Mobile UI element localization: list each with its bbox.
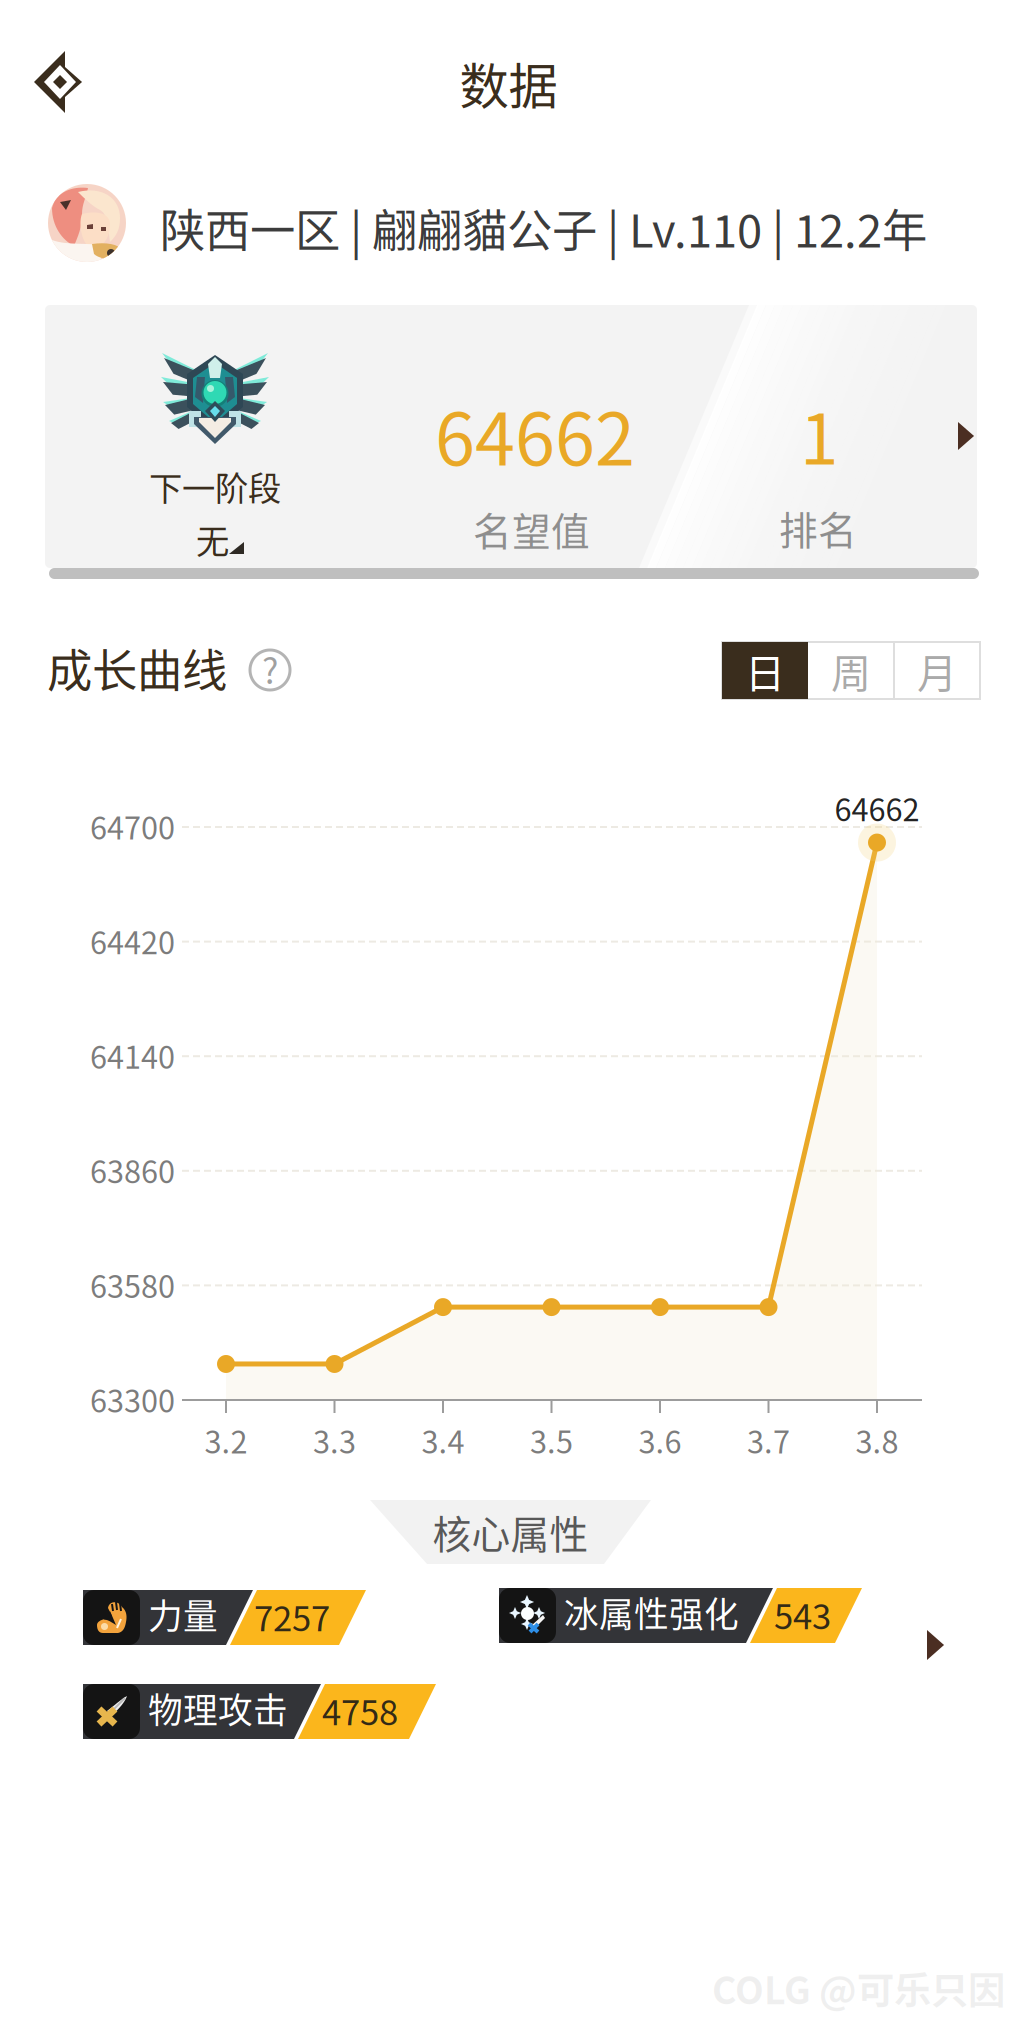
staticText: 3.2 bbox=[204, 1418, 247, 1462]
staticText: 周 bbox=[831, 641, 871, 699]
staticText: 数据 bbox=[459, 47, 557, 118]
button[interactable]: 下一阶段 bbox=[45, 305, 977, 568]
staticText: 月 bbox=[917, 641, 957, 699]
button[interactable]: 陕西一区 | 翩翩貓公子 | Lv.110 | 12.2年 bbox=[48, 180, 948, 268]
staticText: 下一阶段 bbox=[149, 462, 281, 510]
staticText: 力量 bbox=[148, 1589, 218, 1639]
staticText: 3.5 bbox=[530, 1418, 573, 1462]
staticText: ? bbox=[262, 644, 278, 694]
staticText: 64662 bbox=[834, 786, 919, 830]
button[interactable]: Menu bbox=[34, 51, 82, 113]
staticText: 7257 bbox=[254, 1591, 330, 1641]
staticText: 1 bbox=[800, 384, 838, 484]
button[interactable]: More attributes bbox=[927, 1630, 944, 1660]
staticText: 64140 bbox=[90, 1033, 175, 1078]
staticText: 物理攻击 bbox=[148, 1683, 288, 1733]
button[interactable]: 冰属性强化 bbox=[499, 1588, 862, 1643]
staticText: 543 bbox=[774, 1589, 831, 1639]
staticText: 64420 bbox=[90, 919, 175, 963]
button[interactable]: 力量 bbox=[83, 1590, 366, 1645]
button[interactable]: 日 bbox=[722, 642, 808, 699]
button[interactable]: Help bbox=[250, 650, 290, 690]
staticText: 陕西一区 | 翩翩貓公子 | Lv.110 | 12.2年 bbox=[160, 195, 927, 261]
staticText: 名望值 bbox=[473, 501, 590, 557]
button[interactable]: 周 bbox=[808, 642, 894, 699]
staticText: 3.7 bbox=[747, 1418, 790, 1462]
staticText: 成长曲线 bbox=[47, 635, 227, 701]
staticText: 冰属性强化 bbox=[564, 1587, 739, 1637]
staticText: 64700 bbox=[90, 804, 175, 848]
staticText: 64662 bbox=[435, 382, 635, 486]
button[interactable]: 月 bbox=[894, 642, 980, 699]
staticText: 排名 bbox=[779, 500, 857, 556]
staticText: 核心属性 bbox=[432, 1504, 588, 1560]
staticText: COLG @可乐只因 bbox=[712, 1961, 1005, 2015]
staticText: 3.6 bbox=[638, 1418, 681, 1462]
staticText: 63860 bbox=[90, 1148, 175, 1192]
staticText: 4758 bbox=[322, 1685, 398, 1735]
staticText: 63580 bbox=[90, 1262, 175, 1307]
staticText: 63300 bbox=[90, 1377, 175, 1421]
staticText: 无 bbox=[196, 515, 229, 563]
staticText: 日 bbox=[745, 641, 785, 699]
staticText: 3.3 bbox=[313, 1418, 356, 1462]
button[interactable]: 物理攻击 bbox=[83, 1684, 436, 1739]
staticText: 3.8 bbox=[855, 1418, 898, 1462]
staticText: 3.4 bbox=[421, 1418, 464, 1462]
